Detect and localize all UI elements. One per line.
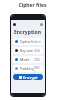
staticText: Cipher files [18, 2, 47, 9]
button[interactable]: Padding [13, 65, 43, 72]
staticText: Cipher [20, 39, 31, 44]
staticText: Padding [20, 66, 34, 71]
staticText: Encrypt [23, 75, 38, 80]
button[interactable]: Back [13, 23, 16, 26]
staticText: Key size [20, 48, 33, 53]
staticText: Mode [20, 57, 30, 62]
button[interactable]: Mode [13, 56, 43, 63]
staticText: Select [31, 39, 41, 44]
button[interactable]: Cipher [13, 38, 43, 45]
button[interactable]: Key size [13, 47, 43, 54]
button[interactable]: More [40, 23, 43, 26]
staticText: PKCS [34, 65, 41, 72]
staticText: CBC [34, 57, 41, 62]
staticText: 256 [34, 48, 41, 53]
button[interactable]: Encrypt [13, 74, 43, 80]
staticText: Encryption [14, 29, 41, 36]
